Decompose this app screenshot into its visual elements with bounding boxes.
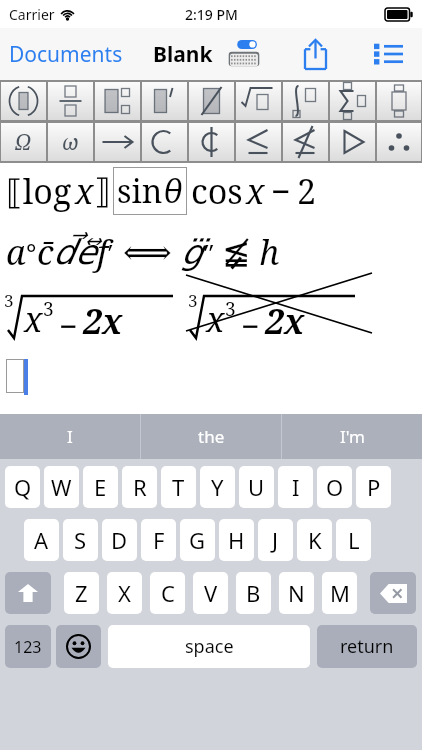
staticText: A — [34, 525, 49, 555]
button[interactable]: return — [317, 625, 417, 668]
button[interactable]: I — [278, 466, 313, 508]
staticText: J — [272, 525, 279, 555]
button[interactable]: Emoji — [56, 625, 101, 668]
button[interactable] — [189, 123, 234, 161]
button[interactable] — [142, 123, 187, 161]
button[interactable]: Ω — [1, 123, 46, 161]
staticText: 3 — [4, 289, 14, 312]
staticText: T — [172, 472, 185, 502]
staticText: Z — [75, 578, 88, 608]
button[interactable] — [377, 82, 421, 120]
button[interactable]: Share — [292, 31, 338, 77]
staticText: ° — [26, 235, 37, 270]
staticText: C — [161, 578, 175, 608]
button[interactable]: X — [107, 572, 142, 614]
button[interactable]: G — [180, 519, 215, 561]
button[interactable]: space — [108, 625, 310, 668]
button[interactable]: ω — [48, 123, 93, 161]
staticText: I — [67, 425, 73, 448]
button[interactable]: Y — [200, 466, 235, 508]
button[interactable]: the — [141, 414, 281, 459]
button[interactable] — [189, 82, 234, 120]
staticText: O — [326, 472, 344, 502]
staticText: space — [185, 634, 234, 659]
staticText: X — [118, 578, 131, 608]
button[interactable] — [1, 82, 46, 120]
staticText: I'm — [340, 425, 365, 448]
button[interactable]: W — [44, 466, 79, 508]
staticText: ⟦log — [6, 168, 72, 214]
button[interactable]: R — [122, 466, 157, 508]
button[interactable]: O — [317, 466, 352, 508]
staticText: θ — [163, 169, 183, 213]
button[interactable]: D — [102, 519, 137, 561]
staticText: h — [259, 229, 280, 275]
button[interactable] — [236, 123, 281, 161]
button[interactable] — [236, 82, 281, 120]
staticText: x — [206, 296, 225, 342]
staticText: V — [204, 578, 218, 608]
button[interactable]: J — [258, 519, 293, 561]
staticText: S — [74, 525, 87, 555]
staticText: the — [198, 425, 225, 448]
staticText: Blank — [153, 40, 213, 69]
staticText: ″ — [204, 235, 214, 270]
button[interactable]: List — [365, 31, 411, 77]
button[interactable]: T — [161, 466, 196, 508]
button[interactable]: E — [83, 466, 118, 508]
staticText: B — [246, 578, 261, 608]
button[interactable]: N — [279, 572, 314, 614]
staticText: K — [308, 525, 322, 555]
button[interactable]: F — [141, 519, 176, 561]
button[interactable] — [283, 123, 328, 161]
button[interactable]: P — [356, 466, 391, 508]
staticText: P — [367, 472, 381, 502]
staticText: x — [24, 296, 43, 342]
staticText: 3 — [225, 296, 236, 322]
staticText: Q — [14, 472, 32, 502]
staticText: M — [330, 578, 350, 608]
staticText: − — [241, 304, 260, 348]
button[interactable] — [95, 82, 140, 120]
staticText: c̄ — [37, 229, 54, 275]
staticText: H — [228, 525, 245, 555]
staticText: L — [348, 525, 360, 555]
button[interactable] — [95, 123, 140, 161]
button[interactable]: Backspace — [370, 572, 416, 614]
button[interactable] — [283, 82, 328, 120]
button[interactable]: Documents — [9, 40, 123, 69]
staticText: I — [292, 472, 300, 502]
staticText: x — [75, 168, 94, 214]
staticText: U — [248, 472, 265, 502]
button[interactable]: A — [24, 519, 59, 561]
staticText: R — [133, 472, 147, 502]
staticText: sin — [117, 169, 163, 213]
staticText: cos — [191, 168, 243, 214]
button[interactable]: Shift — [5, 572, 51, 614]
staticText: N — [288, 578, 305, 608]
staticText: g⃛ — [182, 232, 204, 272]
button[interactable]: I'm — [282, 414, 422, 459]
button[interactable] — [330, 82, 375, 120]
button[interactable] — [142, 82, 187, 120]
button[interactable]: Z — [64, 572, 99, 614]
button[interactable]: I — [0, 414, 140, 459]
button[interactable]: U — [239, 466, 274, 508]
staticText: W — [51, 472, 72, 502]
button[interactable]: 123 — [5, 625, 51, 668]
button[interactable]: B — [236, 572, 271, 614]
button[interactable] — [48, 82, 93, 120]
staticText: ω — [62, 128, 79, 157]
button[interactable]: M — [322, 572, 357, 614]
button[interactable]: H — [219, 519, 254, 561]
button[interactable] — [377, 123, 421, 161]
button[interactable]: K — [297, 519, 332, 561]
button[interactable]: L — [336, 519, 371, 561]
button[interactable]: Toggle keyboard — [222, 34, 266, 74]
button[interactable]: S — [63, 519, 98, 561]
button[interactable]: V — [193, 572, 228, 614]
button[interactable]: C — [150, 572, 185, 614]
button[interactable] — [330, 123, 375, 161]
staticText: F — [153, 525, 165, 555]
button[interactable]: Q — [5, 466, 40, 508]
